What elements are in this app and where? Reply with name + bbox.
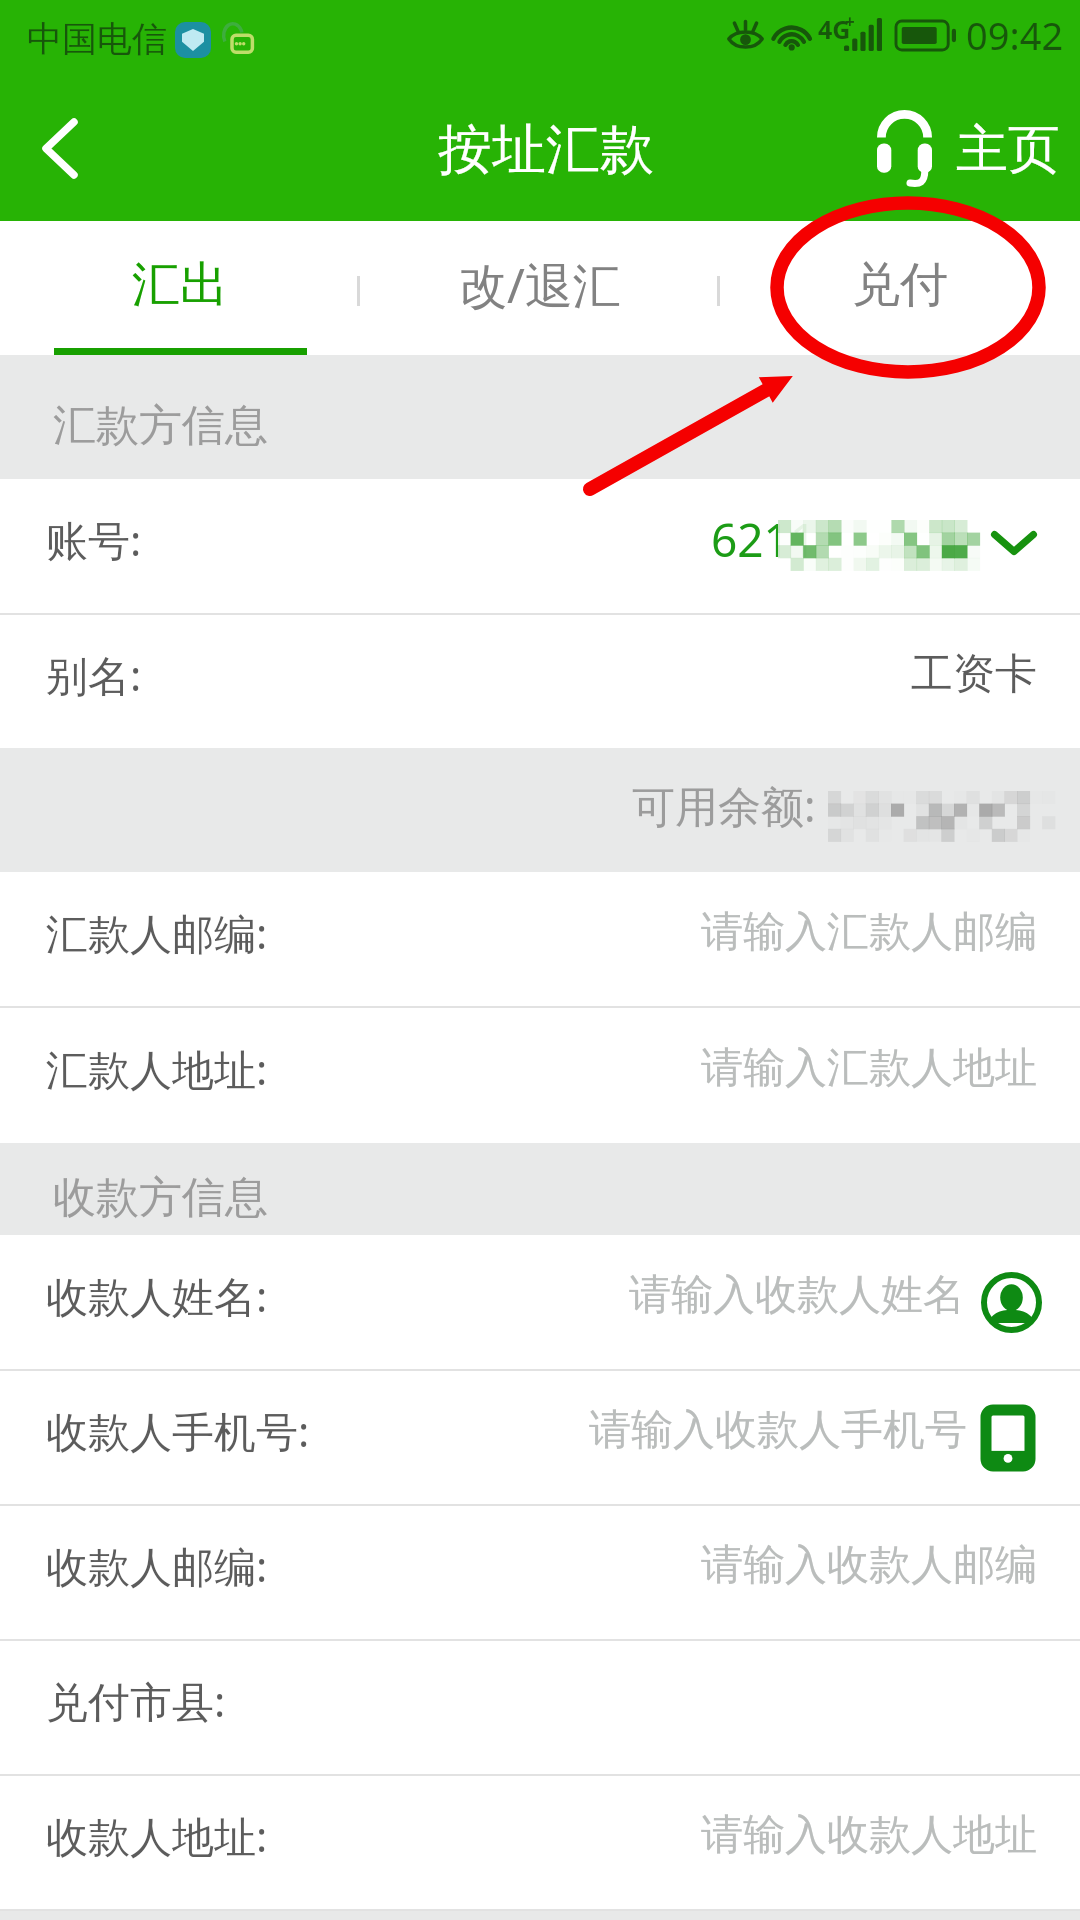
staticText: 请输入收款人地址 xyxy=(701,1809,1037,1862)
button[interactable]: 改/退汇 xyxy=(360,221,720,355)
button[interactable]: 兑付 xyxy=(720,221,1080,355)
button[interactable]: 收款人姓名: xyxy=(0,1235,1080,1369)
staticText: 请输入收款人手机号 xyxy=(589,1404,967,1457)
staticText: 汇款人地址: xyxy=(46,1040,268,1097)
staticText: 09:42 xyxy=(966,9,1064,61)
staticText: 请输入汇款人地址 xyxy=(701,1042,1037,1095)
staticText: 6211 xyxy=(711,508,817,571)
button[interactable]: 选择手机号 xyxy=(986,1410,1030,1466)
staticText: 收款人姓名: xyxy=(46,1267,268,1324)
staticText: 收款人手机号: xyxy=(46,1402,310,1459)
button[interactable]: 汇出 xyxy=(0,221,360,355)
staticText: 请输入汇款人邮编 xyxy=(701,906,1037,959)
button[interactable]: 主页 xyxy=(861,80,1080,221)
button[interactable]: 选择联系人 xyxy=(981,1272,1042,1333)
button[interactable]: 返回 xyxy=(0,80,130,221)
staticText: 汇款方信息 xyxy=(53,399,268,453)
staticText: 可用余额: xyxy=(632,776,816,835)
staticText: 汇出 xyxy=(132,255,228,315)
staticText: 兑付 xyxy=(852,255,948,315)
staticText: 按址汇款 xyxy=(438,116,654,184)
staticText: 别名: xyxy=(46,646,142,703)
staticText: 中国电信 xyxy=(27,17,167,61)
staticText: 汇款人邮编: xyxy=(46,904,268,961)
button[interactable]: 汇款人地址: xyxy=(0,1008,1080,1143)
button[interactable]: 别名: xyxy=(0,615,1080,748)
staticText: 请输入收款人邮编 xyxy=(701,1539,1037,1592)
button[interactable]: 选择账号 xyxy=(981,517,1047,563)
staticText: 4G xyxy=(818,12,851,46)
staticText: 兑付市县: xyxy=(46,1672,226,1729)
button[interactable]: 兑付市县: xyxy=(0,1641,1080,1774)
staticText: 主页 xyxy=(956,117,1060,183)
button[interactable]: 账号: xyxy=(0,479,1080,613)
staticText: 收款方信息 xyxy=(53,1171,268,1225)
staticText: 请输入收款人姓名 xyxy=(629,1269,965,1322)
button[interactable]: 收款人邮编: xyxy=(0,1506,1080,1639)
staticText: + xyxy=(845,10,855,33)
staticText: 收款人地址: xyxy=(46,1807,268,1864)
staticText: 工资卡 xyxy=(911,648,1037,701)
staticText: 账号: xyxy=(46,511,142,568)
staticText: 收款人邮编: xyxy=(46,1537,268,1594)
button[interactable]: 收款人手机号: xyxy=(0,1371,1080,1504)
staticText: 改/退汇 xyxy=(459,252,621,318)
button[interactable]: 汇款人邮编: xyxy=(0,872,1080,1006)
button[interactable]: 收款人地址: xyxy=(0,1776,1080,1909)
